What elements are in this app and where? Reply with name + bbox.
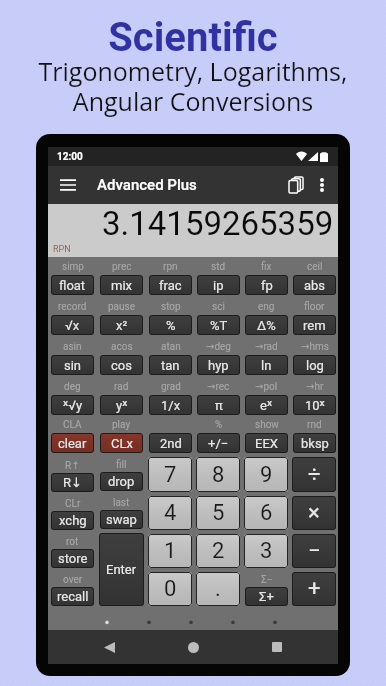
button[interactable]: Back — [92, 630, 126, 664]
staticText: Δ% — [257, 318, 276, 333]
staticText: recall — [57, 589, 89, 604]
staticText: →deg — [206, 341, 231, 353]
staticText: 7 — [164, 462, 177, 488]
button[interactable]: Home — [176, 630, 210, 664]
staticText: drop — [108, 474, 135, 489]
button[interactable]: − — [292, 534, 336, 568]
button[interactable]: fill — [97, 455, 146, 493]
staticText: 3.14159265359 — [102, 204, 334, 243]
staticText: acos — [111, 341, 133, 353]
staticText: cos — [111, 358, 132, 373]
staticText: fp — [261, 278, 273, 293]
staticText: rot — [66, 536, 79, 548]
button[interactable]: CLA — [48, 417, 97, 455]
button[interactable]: 2 — [196, 534, 240, 568]
button[interactable]: over — [48, 570, 97, 608]
button[interactable]: fix — [242, 257, 290, 297]
staticText: ˣ√y — [63, 398, 83, 413]
button[interactable]: pause — [97, 297, 146, 337]
button[interactable]: stop — [146, 297, 194, 337]
staticText: asin — [63, 341, 82, 353]
button[interactable]: last — [97, 493, 146, 531]
button[interactable]: Recent apps — [260, 630, 294, 664]
staticText: xchg — [59, 513, 87, 528]
button[interactable]: rpn — [146, 257, 194, 297]
button[interactable]: 6 — [244, 496, 288, 530]
button[interactable]: deg — [48, 377, 97, 417]
button[interactable]: × — [292, 496, 336, 530]
button[interactable]: simp — [48, 257, 97, 297]
staticText: Advanced Plus — [97, 176, 197, 194]
button[interactable]: 4 — [148, 496, 192, 530]
staticText: Trigonometry, Logarithms, Angular Conver… — [0, 54, 386, 119]
button[interactable]: play — [97, 417, 146, 455]
staticText: CLr — [65, 498, 81, 510]
staticText: eng — [258, 301, 275, 313]
button[interactable]: grad — [146, 377, 194, 417]
button[interactable]: ceil — [290, 257, 338, 297]
staticText: record — [58, 301, 87, 313]
staticText: hyp — [208, 358, 229, 373]
staticText: % — [215, 419, 223, 431]
staticText: ip — [213, 278, 224, 293]
button[interactable]: record — [48, 297, 97, 337]
button[interactable]: CLr — [48, 494, 97, 532]
button[interactable]: eng — [242, 297, 290, 337]
staticText: 0 — [164, 576, 177, 602]
button[interactable]: →hr — [290, 377, 338, 417]
button[interactable]: asin — [48, 337, 97, 377]
staticText: play — [112, 419, 131, 431]
button[interactable]: Enter — [99, 533, 144, 606]
staticText: sci — [212, 301, 225, 313]
staticText: clear — [58, 436, 87, 451]
button[interactable]: prec — [97, 257, 146, 297]
button[interactable]: 8 — [196, 457, 240, 492]
button[interactable]: →deg — [194, 337, 242, 377]
staticText: deg — [64, 381, 81, 393]
button[interactable]: R↑ — [48, 455, 97, 494]
button[interactable]: + — [292, 572, 336, 606]
staticText: 1 — [164, 538, 177, 564]
staticText: fix — [261, 261, 272, 273]
button[interactable]: →pol — [242, 377, 290, 417]
button[interactable]: 2nd — [146, 417, 194, 455]
button[interactable]: ÷ — [292, 457, 336, 492]
button[interactable]: rad — [97, 377, 146, 417]
staticText: stop — [161, 301, 181, 313]
button[interactable]: →rad — [242, 337, 290, 377]
button[interactable]: More options — [310, 171, 334, 199]
staticText: Scientific — [0, 14, 386, 61]
staticText: π — [215, 398, 223, 413]
button[interactable]: rnd — [290, 417, 338, 455]
button[interactable]: atan — [146, 337, 194, 377]
button[interactable]: Copy — [282, 171, 310, 199]
button[interactable]: 3 — [244, 534, 288, 568]
button[interactable]: % — [194, 417, 242, 455]
button[interactable]: floor — [290, 297, 338, 337]
staticText: CLx — [111, 436, 133, 451]
staticText: mix — [111, 278, 133, 293]
button[interactable]: acos — [97, 337, 146, 377]
button[interactable]: 7 — [148, 457, 192, 492]
staticText: 3 — [260, 538, 273, 564]
button[interactable]: 9 — [244, 457, 288, 492]
button[interactable]: std — [194, 257, 242, 297]
button[interactable]: 1 — [148, 534, 192, 568]
button[interactable]: rot — [48, 532, 97, 570]
staticText: eˣ — [260, 398, 273, 413]
staticText: + — [308, 576, 321, 602]
staticText: bksp — [301, 436, 329, 451]
staticText: 2nd — [160, 436, 182, 451]
button[interactable]: sci — [194, 297, 242, 337]
button[interactable]: show — [242, 417, 290, 455]
button[interactable]: →hms — [290, 337, 338, 377]
staticText: ln — [261, 358, 272, 373]
button[interactable]: Open navigation menu — [56, 173, 80, 197]
button[interactable]: →rec — [194, 377, 242, 417]
button[interactable]: 5 — [196, 496, 240, 530]
button[interactable]: Σ− — [242, 570, 290, 608]
button[interactable]: 0 — [148, 572, 192, 606]
button[interactable]: . — [196, 572, 240, 606]
staticText: rem — [303, 318, 326, 333]
staticText: store — [58, 551, 88, 566]
